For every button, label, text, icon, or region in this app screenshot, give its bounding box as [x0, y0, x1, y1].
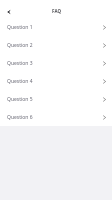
staticText: Question 2 — [7, 42, 33, 49]
button[interactable]: Question 1 — [0, 18, 112, 36]
button[interactable]: Question 6 — [0, 108, 112, 126]
staticText: Question 1 — [7, 24, 33, 31]
button[interactable]: Back — [3, 6, 14, 17]
staticText: Question 4 — [7, 78, 33, 85]
button[interactable]: Question 3 — [0, 54, 112, 72]
button[interactable]: Question 4 — [0, 72, 112, 90]
button[interactable]: Question 5 — [0, 90, 112, 108]
staticText: Question 6 — [7, 114, 33, 121]
staticText: Question 5 — [7, 96, 33, 103]
staticText: FAQ — [52, 8, 61, 14]
button[interactable]: Question 2 — [0, 36, 112, 54]
staticText: Question 3 — [7, 60, 33, 67]
